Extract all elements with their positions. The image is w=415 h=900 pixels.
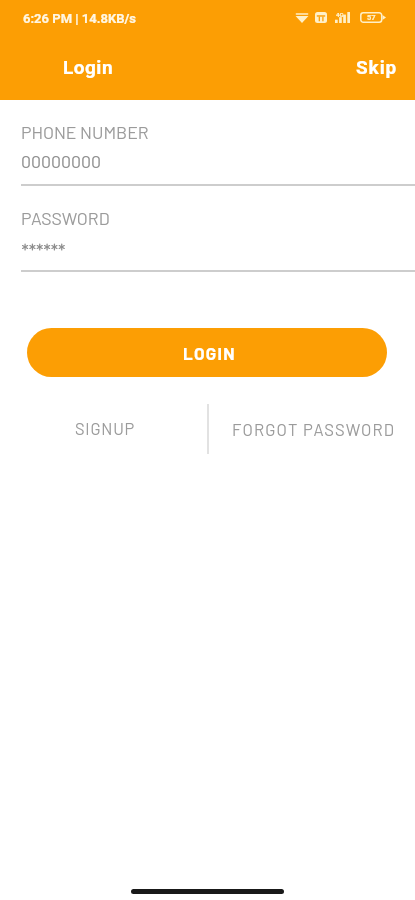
button[interactable]: Login [63,56,114,78]
button[interactable]: LOGIN [27,328,387,377]
staticText: 00000000 [21,150,101,171]
staticText: LOGIN [183,343,236,363]
button[interactable]: SIGNUP [2,404,209,454]
staticText: PASSWORD [21,207,110,228]
button[interactable]: FORGOT PASSWORD [210,404,415,454]
other: Status icons [295,12,386,23]
staticText: FORGOT PASSWORD [232,419,396,439]
staticText: 6:26 PM | 14.8KB/s [23,11,136,26]
staticText: SIGNUP [75,419,136,439]
staticText: 57 [367,13,376,22]
button[interactable]: Skip [356,56,398,78]
staticText: 4G [336,11,344,18]
staticText: PHONE NUMBER [21,121,149,142]
